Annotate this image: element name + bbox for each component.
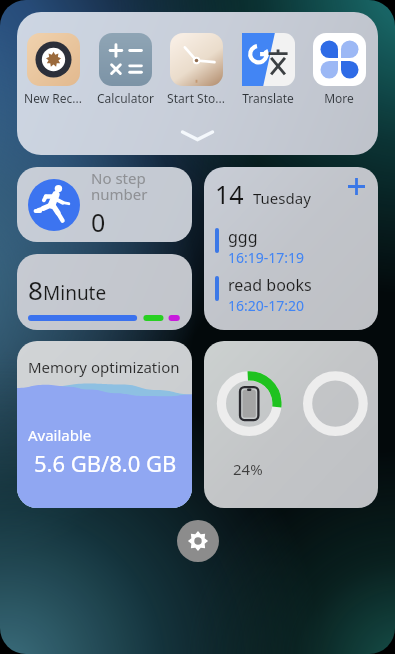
button[interactable]: Start Sto... [163, 33, 229, 106]
button[interactable]: No step number [17, 167, 192, 242]
staticText: Tuesday [253, 188, 311, 208]
staticText: Calculator [97, 90, 154, 106]
staticText: Memory optimization [28, 357, 180, 377]
staticText: Translate [242, 90, 294, 106]
staticText: More [324, 90, 354, 106]
staticText: No step number [91, 168, 148, 204]
button[interactable]: Memory optimization [17, 341, 192, 508]
button[interactable]: 24% [204, 341, 378, 508]
staticText: 8 [28, 272, 43, 307]
staticText: Available [28, 425, 92, 445]
button[interactable]: Translate [235, 33, 301, 106]
staticText: Minute [43, 280, 107, 306]
button[interactable]: New Rec... [20, 33, 86, 106]
staticText: 5.6 GB/8.0 GB [34, 448, 177, 478]
button[interactable]: Add event [343, 173, 369, 199]
button[interactable]: Settings [177, 520, 219, 562]
staticText: 16:20-17:20 [228, 296, 305, 315]
staticText: 24% [233, 459, 263, 479]
staticText: ggg [228, 226, 258, 248]
button[interactable]: 8 [17, 254, 192, 330]
staticText: 14 [215, 177, 244, 211]
button[interactable]: Calculator [92, 33, 158, 106]
staticText: Start Sto... [167, 90, 225, 106]
button[interactable]: 14 [204, 167, 378, 330]
staticText: read books [228, 274, 312, 296]
staticText: New Rec... [24, 90, 82, 106]
staticText: 0 [91, 205, 106, 239]
staticText: 16:19-17:19 [228, 248, 305, 267]
button[interactable]: More [306, 33, 372, 106]
